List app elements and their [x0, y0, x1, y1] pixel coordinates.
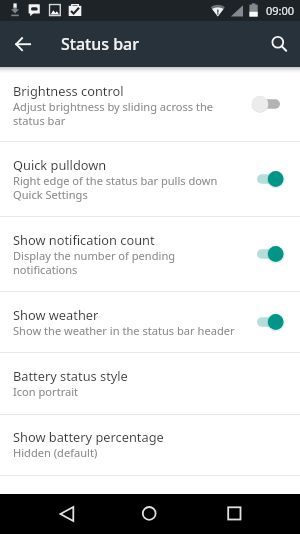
button[interactable]: Show notification count	[244, 217, 300, 291]
staticText: Show notification count	[13, 231, 155, 248]
staticText: Show weather	[13, 306, 99, 323]
staticText: Battery status style	[13, 367, 128, 384]
button[interactable]: Brightness control	[0, 67, 300, 141]
button[interactable]: Brightness control	[244, 67, 300, 141]
button[interactable]: Home	[130, 494, 170, 534]
button[interactable]: Recent apps	[215, 494, 255, 534]
button[interactable]: Navigate up	[0, 21, 46, 67]
button[interactable]: Quick pulldown	[244, 142, 300, 216]
staticText: Quick pulldown	[13, 156, 107, 173]
staticText: Status bar	[61, 33, 140, 55]
button[interactable]: Battery status style	[0, 353, 300, 414]
staticText: Show the weather in the status bar heade…	[13, 323, 235, 338]
staticText: Show battery percentage	[13, 428, 164, 445]
button[interactable]: Search	[254, 21, 300, 67]
button[interactable]: Show weather	[244, 292, 300, 352]
button[interactable]: Back	[45, 494, 85, 534]
staticText: Icon portrait	[13, 384, 79, 399]
button[interactable]: Quick pulldown	[0, 142, 300, 216]
staticText: Hidden (default)	[13, 445, 98, 460]
staticText: Adjust brightness by sliding across the …	[13, 99, 242, 129]
button[interactable]: Show weather	[0, 292, 300, 352]
staticText: 09:00	[266, 3, 295, 18]
button[interactable]: Show notification count	[0, 217, 300, 291]
staticText: Brightness control	[13, 82, 124, 99]
button[interactable]: Show battery percentage	[0, 415, 300, 475]
staticText: Right edge of the status bar pulls down …	[13, 173, 242, 203]
staticText: Display the number of pending notificati…	[13, 248, 242, 278]
